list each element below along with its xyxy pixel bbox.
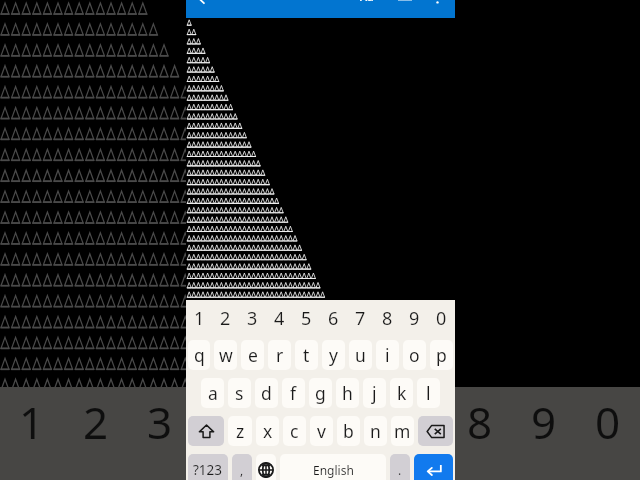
staticText: f — [290, 381, 297, 405]
button[interactable]: t — [295, 340, 318, 370]
staticText: i — [385, 343, 390, 367]
staticText: l — [426, 381, 431, 405]
staticText: 9 — [409, 306, 420, 331]
staticText: 0 — [436, 306, 447, 331]
button[interactable]: r — [268, 340, 291, 370]
button[interactable]: 3 — [128, 387, 192, 457]
staticText: p — [436, 343, 447, 367]
button[interactable]: 9 — [401, 300, 428, 336]
button[interactable]: , — [232, 454, 252, 480]
button[interactable]: m — [391, 416, 414, 446]
button[interactable]: j — [363, 378, 386, 408]
button[interactable]: 4 — [266, 300, 293, 336]
button[interactable]: Minimise — [392, 0, 418, 7]
staticText: s — [235, 381, 244, 405]
button[interactable]: e — [241, 340, 264, 370]
button[interactable]: Enter — [414, 454, 453, 480]
staticText: 5 — [275, 392, 301, 452]
button[interactable]: c — [283, 416, 306, 446]
button[interactable]: Shift — [188, 416, 224, 446]
staticText: 8 — [467, 392, 493, 452]
staticText: o — [409, 343, 420, 367]
button[interactable]: i — [376, 340, 399, 370]
staticText: . — [398, 462, 402, 478]
button[interactable]: h — [336, 378, 359, 408]
staticText: r — [276, 343, 284, 367]
button[interactable]: 9 — [512, 387, 576, 457]
button[interactable]: x — [256, 416, 279, 446]
button[interactable]: English — [280, 454, 386, 480]
staticText: v — [317, 419, 326, 443]
staticText: , — [240, 462, 244, 478]
staticText: d — [261, 381, 272, 405]
button[interactable]: 6 — [320, 387, 384, 457]
button[interactable]: 5 — [293, 300, 320, 336]
staticText: g — [315, 381, 326, 405]
button[interactable]: 2 — [212, 300, 239, 336]
staticText: 0 — [595, 392, 621, 452]
button[interactable]: More options — [424, 0, 450, 7]
staticText: 4 — [211, 392, 237, 452]
button[interactable]: Navigate up — [188, 0, 216, 8]
staticText: y — [329, 343, 338, 367]
button[interactable]: z — [228, 416, 252, 446]
staticText: k — [397, 381, 407, 405]
staticText: English — [313, 462, 354, 478]
button[interactable]: Backspace — [418, 416, 453, 446]
staticText: n — [370, 419, 381, 443]
button[interactable]: a — [201, 378, 224, 408]
button[interactable]: 1 — [0, 387, 64, 457]
staticText: 7 — [355, 306, 366, 331]
staticText: 6 — [328, 306, 339, 331]
button[interactable]: 6 — [320, 300, 347, 336]
staticText: z — [236, 419, 245, 443]
staticText: 4 — [274, 306, 285, 331]
button[interactable]: 5 — [256, 387, 320, 457]
button[interactable]: k — [390, 378, 413, 408]
button[interactable]: ?123 — [188, 454, 228, 480]
staticText: u — [355, 343, 366, 367]
button[interactable]: 4 — [192, 387, 256, 457]
button[interactable]: y — [322, 340, 345, 370]
button[interactable]: 7 — [347, 300, 374, 336]
staticText: q — [194, 343, 205, 367]
button[interactable]: l — [417, 378, 440, 408]
staticText: e — [248, 343, 258, 367]
staticText: 8 — [382, 306, 393, 331]
staticText: ?123 — [193, 461, 223, 479]
button[interactable]: p — [430, 340, 453, 370]
button[interactable]: b — [337, 416, 360, 446]
button[interactable]: 0 — [576, 387, 640, 457]
button[interactable]: v — [310, 416, 333, 446]
button[interactable]: n — [364, 416, 387, 446]
staticText: h — [342, 381, 353, 405]
button[interactable]: 7 — [384, 387, 448, 457]
button[interactable]: o — [403, 340, 426, 370]
staticText: 1 — [194, 306, 205, 331]
button[interactable]: g — [309, 378, 332, 408]
button[interactable]: f — [282, 378, 305, 408]
staticText: c — [290, 419, 299, 443]
staticText: x — [263, 419, 273, 443]
button[interactable]: q — [188, 340, 210, 370]
button[interactable]: d — [255, 378, 278, 408]
button[interactable]: Text size — [354, 0, 380, 5]
button[interactable]: 8 — [374, 300, 401, 336]
button[interactable]: . — [390, 454, 410, 480]
staticText: b — [343, 419, 354, 443]
button[interactable]: 2 — [64, 387, 128, 457]
button[interactable]: Change language — [256, 454, 276, 480]
button[interactable]: 8 — [448, 387, 512, 457]
button[interactable]: 1 — [186, 300, 212, 336]
button[interactable]: s — [228, 378, 251, 408]
button[interactable]: 3 — [239, 300, 266, 336]
staticText: Aa — [360, 0, 374, 4]
staticText: 2 — [83, 392, 109, 452]
staticText: 3 — [247, 306, 258, 331]
staticText: 3 — [147, 392, 173, 452]
button[interactable]: w — [214, 340, 237, 370]
staticText: t — [303, 343, 310, 367]
button[interactable]: u — [349, 340, 372, 370]
button[interactable]: 0 — [428, 300, 455, 336]
staticText: 2 — [220, 306, 231, 331]
